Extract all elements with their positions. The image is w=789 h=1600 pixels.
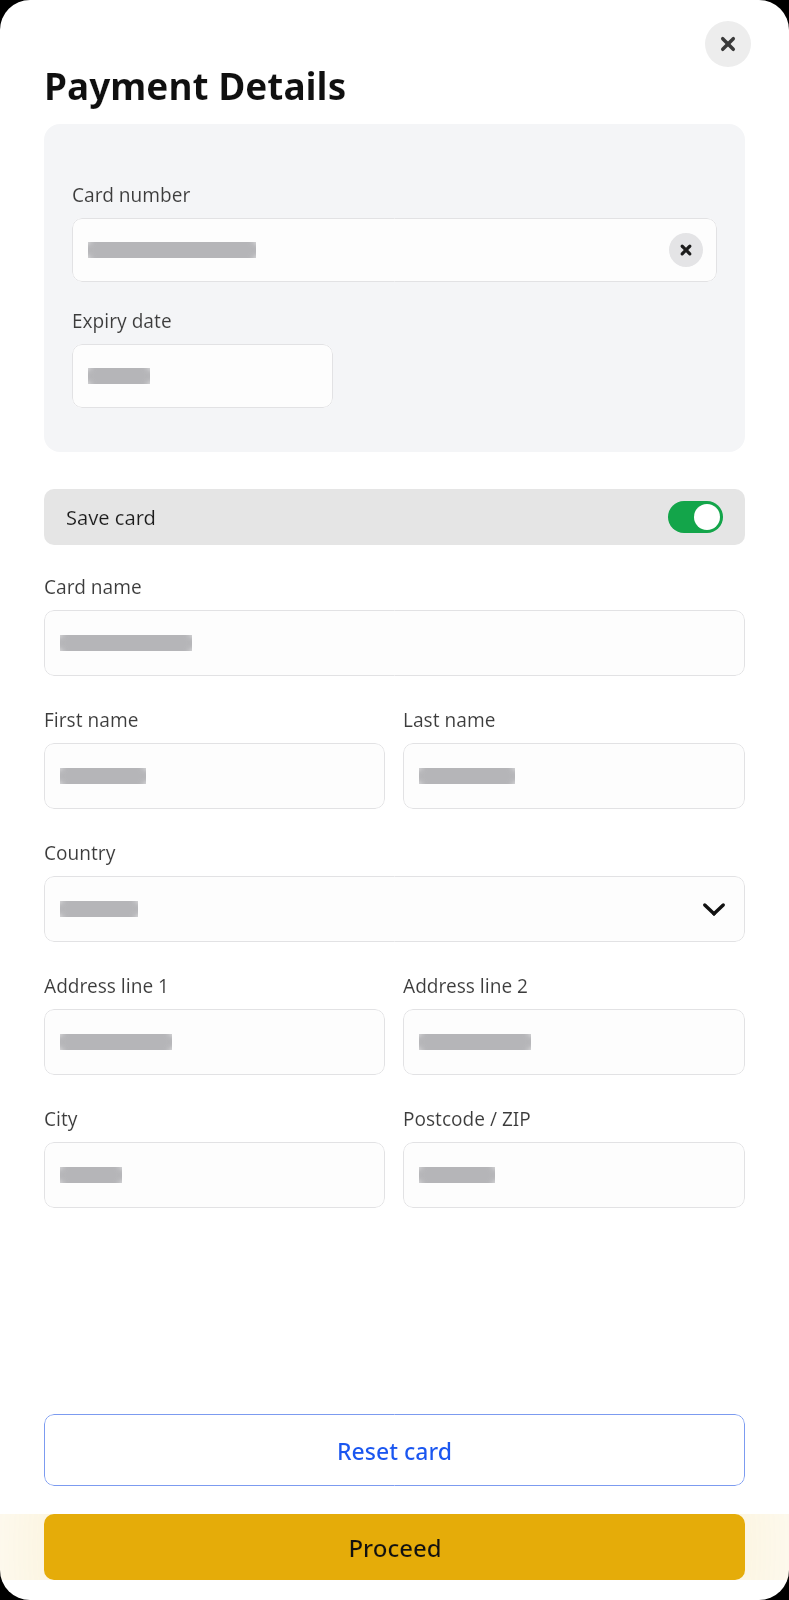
button[interactable]: Reset card [44, 1414, 745, 1486]
staticText: Reset card [337, 1435, 452, 1466]
button[interactable] [44, 1009, 385, 1075]
button[interactable]: Select country [44, 876, 745, 942]
button[interactable]: Clear card number [669, 233, 703, 267]
staticText: Expiry date [72, 308, 172, 334]
staticText: Address line 2 [403, 973, 528, 999]
button[interactable] [72, 344, 333, 408]
staticText: Postcode / ZIP [403, 1106, 531, 1132]
button[interactable] [403, 1142, 745, 1208]
button[interactable] [44, 743, 385, 809]
button[interactable]: Save card [44, 489, 745, 545]
staticText: Country [44, 840, 116, 866]
button[interactable]: Clear card number [72, 218, 717, 282]
staticText: City [44, 1106, 78, 1132]
staticText: Save card [66, 504, 156, 531]
staticText: Payment Details [44, 60, 347, 110]
staticText: First name [44, 707, 139, 733]
button[interactable]: Close [705, 21, 751, 67]
button[interactable] [44, 610, 745, 676]
staticText: Card name [44, 574, 142, 600]
button[interactable] [403, 743, 745, 809]
staticText: Card number [72, 182, 191, 208]
button[interactable] [44, 1142, 385, 1208]
button[interactable]: Select country [697, 892, 731, 926]
staticText: Address line 1 [44, 973, 169, 999]
staticText: Proceed [348, 1531, 442, 1564]
button[interactable] [403, 1009, 745, 1075]
staticText: Last name [403, 707, 496, 733]
button[interactable]: Proceed [44, 1514, 745, 1580]
